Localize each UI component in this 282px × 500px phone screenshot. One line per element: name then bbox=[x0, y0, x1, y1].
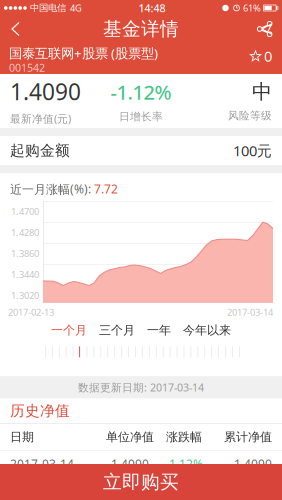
staticText: -1.12% bbox=[110, 79, 171, 105]
button[interactable]: 今年以来 bbox=[177, 323, 237, 337]
staticText: 一年 bbox=[147, 323, 171, 338]
staticText: 61% bbox=[243, 2, 261, 14]
staticText: 7.72 bbox=[94, 181, 118, 197]
staticText: 一个月 bbox=[51, 323, 87, 338]
staticText: 中 bbox=[252, 80, 272, 104]
staticText: 1.4090 bbox=[234, 456, 272, 472]
staticText: 最新净值(元) bbox=[10, 111, 71, 126]
staticText: 2017-02-13 bbox=[8, 306, 54, 318]
staticText: 100元 bbox=[233, 141, 272, 160]
staticText: 累计净值 bbox=[224, 430, 272, 444]
staticText: 中国电信 bbox=[30, 2, 66, 14]
staticText: 历史净值 bbox=[10, 402, 70, 420]
staticText: 1.4280 bbox=[11, 226, 39, 239]
staticText: 风险等级 bbox=[228, 109, 272, 122]
staticText: 国泰互联网+股票 (股票型) bbox=[9, 44, 158, 62]
staticText: 1.4090 bbox=[10, 76, 81, 106]
staticText: 立即购买 bbox=[103, 470, 179, 493]
staticText: -1.12% bbox=[165, 456, 203, 472]
staticText: 2017-03-14 bbox=[227, 306, 273, 318]
button[interactable]: 立即购买 bbox=[0, 464, 282, 500]
staticText: 1.3020 bbox=[11, 289, 39, 302]
staticText: 基金详情 bbox=[103, 17, 179, 40]
staticText: 001542 bbox=[9, 60, 45, 75]
staticText: 近一月涨幅(%): bbox=[10, 181, 91, 197]
staticText: 三个月 bbox=[99, 323, 135, 338]
staticText: 涨跌幅 bbox=[166, 430, 202, 444]
button[interactable]: 三个月 bbox=[93, 323, 141, 337]
staticText: 起购金额 bbox=[10, 141, 70, 159]
staticText: 今年以来 bbox=[183, 323, 231, 338]
staticText: 2017-03-14 bbox=[10, 456, 74, 472]
button[interactable]: 收藏 bbox=[250, 46, 272, 66]
button[interactable]: 一个月 bbox=[45, 323, 93, 337]
staticText: 0 bbox=[264, 46, 272, 66]
button[interactable]: 分享 bbox=[251, 16, 278, 42]
staticText: 日增长率 bbox=[119, 110, 163, 123]
staticText: 1.3440 bbox=[11, 268, 39, 281]
button[interactable]: 返回 bbox=[4, 16, 27, 42]
staticText: 日期 bbox=[10, 430, 34, 444]
staticText: 1.4700 bbox=[11, 205, 39, 218]
staticText: 14:48 bbox=[138, 1, 165, 15]
staticText: 4G bbox=[70, 2, 82, 14]
staticText: 1.3860 bbox=[11, 247, 39, 260]
button[interactable]: 一年 bbox=[141, 323, 177, 337]
staticText: 数据更新日期: 2017-03-14 bbox=[78, 380, 204, 394]
staticText: 1.4090 bbox=[111, 456, 149, 472]
staticText: 单位净值 bbox=[106, 430, 154, 444]
